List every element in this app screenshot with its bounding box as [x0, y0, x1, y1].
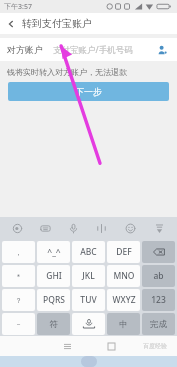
button[interactable]: TUV	[72, 289, 105, 311]
button[interactable]: 中	[107, 313, 140, 335]
staticText: 钱将实时转入对方账户，无法退款	[7, 67, 127, 77]
button[interactable]: ab	[142, 265, 175, 287]
staticText: JKL	[82, 270, 95, 282]
button[interactable]: 语音输入	[59, 217, 87, 240]
button[interactable]: 输入法切换	[87, 217, 116, 240]
button[interactable]: 收起键盘	[145, 217, 174, 240]
button[interactable]: 下一步	[8, 82, 169, 101]
button[interactable]: 符	[37, 313, 70, 335]
button[interactable]: JKL	[72, 265, 105, 287]
staticText: 123	[151, 294, 166, 306]
staticText: 转到支付宝账户	[22, 17, 92, 30]
staticText: WXYZ	[112, 294, 136, 306]
button[interactable]: ^_^	[37, 241, 70, 263]
button[interactable]: －	[2, 313, 35, 335]
staticText: ，	[15, 248, 22, 257]
staticText: TUV	[80, 294, 97, 306]
button[interactable]: 返回	[0, 13, 22, 34]
staticText: －	[15, 320, 22, 329]
staticText: 中	[119, 319, 128, 330]
staticText: 下一步	[75, 86, 102, 97]
button[interactable]: 完成	[142, 313, 175, 335]
button[interactable]: 键盘设置	[31, 217, 59, 240]
staticText: ab	[153, 270, 164, 282]
staticText: 百度经验	[143, 342, 167, 350]
button[interactable]: 选择联系人	[154, 42, 170, 58]
button[interactable]: 主屏幕	[89, 336, 133, 356]
staticText: ＊	[15, 272, 22, 281]
button[interactable]: PQRS	[37, 289, 70, 311]
staticText: 对方账户	[7, 44, 43, 55]
button[interactable]: ABC	[72, 241, 105, 263]
staticText: ？	[15, 296, 22, 305]
button[interactable]: 语音搜索	[3, 217, 31, 240]
staticText: 支付宝账户/手机号码	[53, 44, 133, 56]
staticText: PQRS	[43, 294, 65, 306]
button[interactable]: 表情	[116, 217, 145, 240]
staticText: ^_^	[47, 246, 61, 258]
staticText: DEF	[116, 246, 132, 258]
button[interactable]: WXYZ	[107, 289, 140, 311]
button[interactable]: 123	[142, 289, 175, 311]
button[interactable]: ，	[2, 241, 35, 263]
staticText: 符	[49, 319, 58, 330]
button[interactable]: ＊	[2, 265, 35, 287]
button[interactable]: ？	[2, 289, 35, 311]
staticText: ABC	[80, 246, 97, 258]
staticText: MNO	[113, 270, 135, 282]
button[interactable]: DEF	[107, 241, 140, 263]
staticText: 完成	[150, 319, 167, 330]
button[interactable]: 空格	[72, 313, 105, 335]
button[interactable]: GHI	[37, 265, 70, 287]
button[interactable]: 对方账户	[7, 38, 170, 61]
button[interactable]	[142, 241, 175, 263]
staticText: GHI	[46, 270, 62, 282]
staticText: 下午3:57	[4, 2, 32, 12]
button[interactable]: MNO	[107, 265, 140, 287]
button[interactable]: 最近任务	[45, 336, 89, 356]
